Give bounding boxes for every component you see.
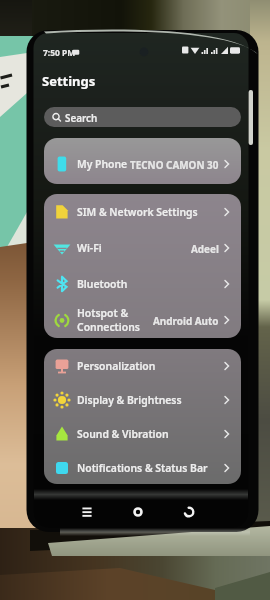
button[interactable]: Recent apps — [78, 503, 96, 521]
staticText: Hotspot & Connections — [77, 306, 140, 334]
button[interactable]: Sound & Vibration — [44, 417, 241, 451]
staticText: Display & Brightness — [77, 393, 182, 407]
staticText: 7:50 PM — [43, 47, 76, 58]
staticText: SIM & Network Settings — [77, 205, 198, 219]
staticText: Personalization — [77, 359, 156, 373]
button[interactable]: Display & Brightness — [44, 383, 241, 417]
staticText: Wi-Fi — [77, 241, 102, 255]
button[interactable]: Hotspot & Connections — [44, 302, 241, 338]
button[interactable]: Back — [180, 503, 198, 521]
staticText: TECNO CAMON 30 — [130, 158, 219, 171]
button[interactable]: Personalization — [44, 349, 241, 383]
button[interactable]: Search — [44, 107, 241, 127]
staticText: Android Auto — [153, 314, 219, 327]
staticText: Bluetooth — [77, 277, 128, 291]
staticText: Search — [65, 111, 98, 124]
staticText: Adeel — [191, 242, 219, 255]
staticText: My Phone — [77, 157, 128, 171]
button[interactable]: Home — [129, 503, 147, 521]
button[interactable]: Wi-Fi — [44, 230, 241, 266]
staticText: Sound & Vibration — [77, 427, 169, 441]
button[interactable]: Notifications & Status Bar — [44, 451, 241, 484]
staticText: Settings — [42, 72, 96, 90]
staticText: Notifications & Status Bar — [77, 461, 208, 475]
button[interactable]: SIM & Network Settings — [44, 194, 241, 230]
button[interactable]: My Phone — [44, 138, 241, 184]
button[interactable]: Bluetooth — [44, 266, 241, 302]
